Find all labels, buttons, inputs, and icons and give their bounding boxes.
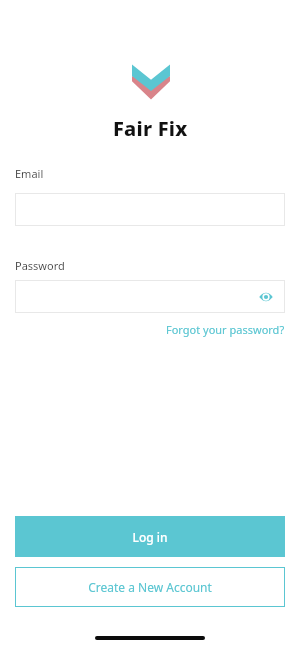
button[interactable]: Show password [255, 286, 277, 308]
staticText: Email [15, 166, 44, 181]
button[interactable]: Log in [15, 516, 285, 557]
staticText: Password [15, 258, 65, 273]
staticText: Create a New Account [88, 579, 212, 595]
staticText: Log in [132, 529, 168, 545]
button[interactable]: Create a New Account [15, 567, 285, 607]
button[interactable]: Forgot your password? [166, 322, 285, 337]
button[interactable] [15, 193, 285, 226]
staticText: Fair Fix [113, 115, 188, 142]
button[interactable]: Show password [15, 280, 285, 313]
